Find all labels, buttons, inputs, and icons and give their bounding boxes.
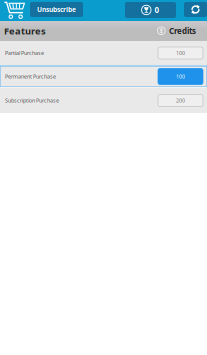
staticText: Subscription Purchase xyxy=(5,97,59,104)
button[interactable]: Shopping cart xyxy=(4,2,26,20)
staticText: Unsubscribe xyxy=(37,5,76,14)
button[interactable]: Partial Purchase xyxy=(0,41,207,65)
staticText: Partial Purchase xyxy=(5,49,44,57)
button[interactable]: Unsubscribe xyxy=(30,2,83,17)
staticText: 100 xyxy=(176,49,185,57)
button[interactable]: Refresh xyxy=(184,2,207,17)
staticText: Features xyxy=(4,25,46,37)
staticText: Permanent Purchase xyxy=(5,73,56,80)
button[interactable]: 0 xyxy=(125,2,176,18)
staticText: 200 xyxy=(176,97,185,104)
staticText: 0 xyxy=(155,5,160,15)
button[interactable]: Subscription Purchase xyxy=(0,88,207,113)
button[interactable]: Permanent Purchase xyxy=(0,66,207,87)
staticText: 100 xyxy=(176,73,185,80)
staticText: Credits xyxy=(169,26,196,36)
